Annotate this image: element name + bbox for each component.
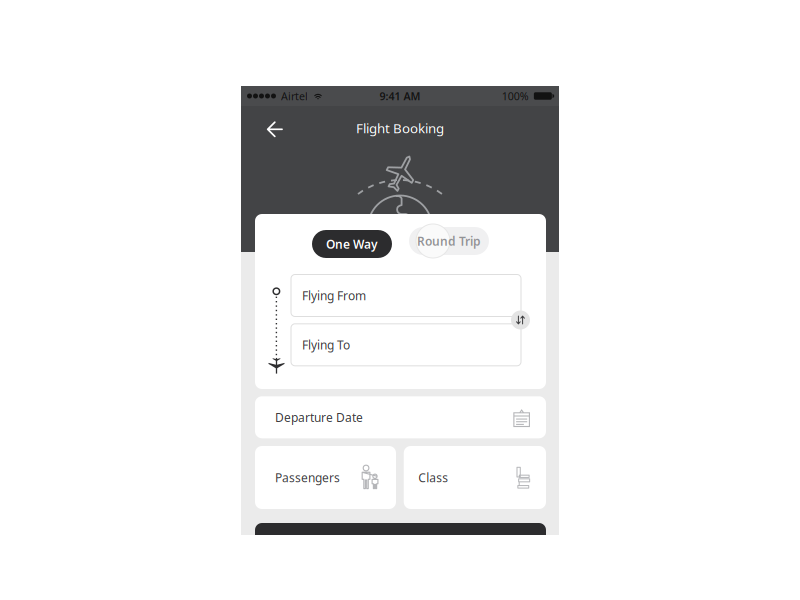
- staticText: Class: [418, 469, 448, 485]
- staticText: 9:41 AM: [379, 89, 420, 103]
- staticText: Flying From: [302, 287, 366, 303]
- staticText: Round Trip: [417, 233, 481, 249]
- button[interactable]: One Way: [312, 230, 392, 258]
- button[interactable]: Swap origin and destination: [511, 310, 530, 329]
- staticText: Passengers: [275, 469, 340, 485]
- staticText: Flight Booking: [356, 119, 444, 137]
- staticText: Departure Date: [275, 409, 363, 425]
- button[interactable]: Back: [253, 107, 297, 151]
- staticText: One Way: [326, 236, 378, 252]
- button[interactable]: Departure Date: [255, 396, 546, 438]
- staticText: Flying To: [302, 337, 350, 353]
- button[interactable]: Flying To: [291, 324, 521, 366]
- button[interactable]: Round Trip: [409, 230, 489, 258]
- button[interactable]: Flying From: [291, 274, 521, 316]
- button[interactable]: Search Flights: [255, 523, 546, 567]
- button[interactable]: Class: [404, 446, 546, 509]
- staticText: 100%: [502, 89, 529, 103]
- button[interactable]: Passengers: [255, 446, 396, 509]
- staticText: Airtel: [281, 89, 308, 103]
